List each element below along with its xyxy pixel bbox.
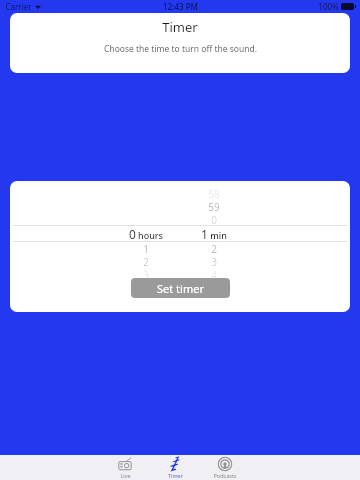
button[interactable]: Podcasts: [200, 455, 250, 480]
staticText: 3: [143, 268, 149, 278]
staticText: 100%: [318, 1, 339, 12]
staticText: min: [210, 229, 227, 241]
staticText: 2: [211, 242, 217, 255]
button[interactable]: Live: [100, 455, 150, 480]
staticText: 1: [201, 226, 208, 242]
staticText: Set timer: [157, 281, 204, 296]
button[interactable]: Minutes picker: [183, 187, 245, 278]
staticText: Podcasts: [213, 472, 237, 479]
button[interactable]: Set timer: [131, 278, 230, 298]
staticText: hours: [138, 229, 163, 241]
staticText: Carrier: [5, 1, 32, 12]
button[interactable]: Timer: [150, 455, 200, 480]
staticText: 58: [208, 187, 220, 200]
staticText: Live: [120, 472, 131, 479]
staticText: Timer: [162, 18, 198, 36]
staticText: 0: [211, 213, 217, 226]
staticText: 59: [208, 200, 220, 213]
staticText: Timer: [168, 472, 183, 479]
staticText: 0: [129, 226, 136, 242]
staticText: 12:43 PM: [163, 1, 198, 12]
staticText: 3: [211, 255, 217, 268]
staticText: 4: [211, 268, 217, 278]
staticText: 1: [143, 242, 149, 255]
staticText: Choose the time to turn off the sound.: [104, 43, 257, 55]
staticText: 2: [143, 255, 149, 268]
button[interactable]: Hours picker: [115, 187, 177, 278]
